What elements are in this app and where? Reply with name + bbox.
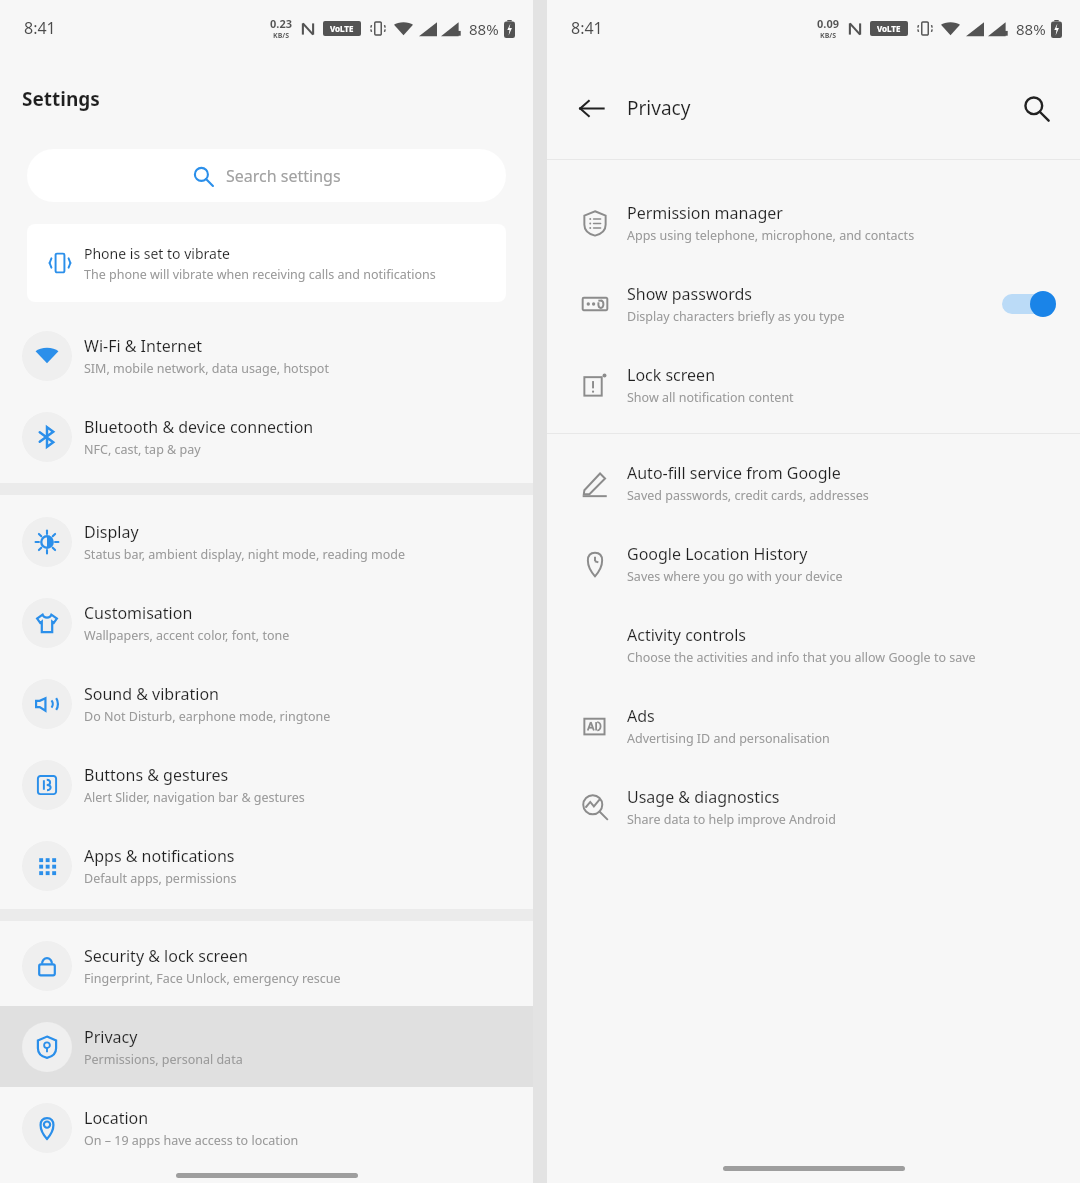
staticText: Fingerprint, Face Unlock, emergency resc… xyxy=(84,970,341,987)
button[interactable]: Show passwords xyxy=(547,263,1080,344)
staticText: Settings xyxy=(22,86,100,112)
button[interactable]: Ads xyxy=(547,685,1080,766)
staticText: Show passwords xyxy=(627,283,752,305)
button[interactable]: Lock screen xyxy=(547,344,1080,425)
staticText: Sound & vibration xyxy=(84,683,219,705)
staticText: Security & lock screen xyxy=(84,945,248,967)
staticText: Privacy xyxy=(627,95,691,121)
staticText: Lock screen xyxy=(627,364,716,386)
staticText: Privacy xyxy=(84,1026,138,1048)
staticText: Google Location History xyxy=(627,543,808,565)
button[interactable]: Auto-fill service from Google xyxy=(547,442,1080,523)
staticText: Advertising ID and personalisation xyxy=(627,730,830,747)
staticText: Display characters briefly as you type xyxy=(627,308,845,325)
staticText: Share data to help improve Android xyxy=(627,811,836,828)
staticText: Usage & diagnostics xyxy=(627,786,780,808)
button[interactable]: Location xyxy=(0,1087,533,1168)
button[interactable]: Wi-Fi & Internet xyxy=(0,315,533,396)
staticText: Do Not Disturb, earphone mode, ringtone xyxy=(84,708,331,725)
button[interactable]: Apps & notifications xyxy=(0,825,533,906)
staticText: Search settings xyxy=(226,165,341,187)
staticText: Apps using telephone, microphone, and co… xyxy=(627,227,915,244)
staticText: Activity controls xyxy=(627,624,746,646)
button[interactable]: Google Location History xyxy=(547,523,1080,604)
staticText: Ads xyxy=(627,705,655,727)
staticText: Status bar, ambient display, night mode,… xyxy=(84,546,406,563)
button[interactable]: Display xyxy=(0,501,533,582)
button[interactable]: Privacy xyxy=(0,1006,533,1087)
staticText: Bluetooth & device connection xyxy=(84,416,314,438)
staticText: Auto-fill service from Google xyxy=(627,462,841,484)
staticText: KB/S xyxy=(820,31,837,41)
staticText: SIM, mobile network, data usage, hotspot xyxy=(84,360,329,377)
staticText: Alert Slider, navigation bar & gestures xyxy=(84,789,305,806)
button[interactable]: Usage & diagnostics xyxy=(547,766,1080,847)
button[interactable]: Security & lock screen xyxy=(0,925,533,1006)
staticText: Saved passwords, credit cards, addresses xyxy=(627,487,869,504)
staticText: Buttons & gestures xyxy=(84,764,229,786)
button[interactable]: Search settings xyxy=(27,149,506,202)
staticText: 0.09 xyxy=(817,16,839,31)
staticText: KB/S xyxy=(273,31,290,41)
staticText: Saves where you go with your device xyxy=(627,568,843,585)
button[interactable]: Back xyxy=(567,84,615,132)
staticText: The phone will vibrate when receiving ca… xyxy=(84,266,436,283)
staticText: Default apps, permissions xyxy=(84,870,237,887)
button[interactable]: Phone is set to vibrate xyxy=(27,224,506,302)
staticText: Wallpapers, accent color, font, tone xyxy=(84,627,290,644)
button[interactable]: Customisation xyxy=(0,582,533,663)
staticText: Display xyxy=(84,521,139,543)
button[interactable]: Permission manager xyxy=(547,182,1080,263)
staticText: Show all notification content xyxy=(627,389,794,406)
button[interactable]: Sound & vibration xyxy=(0,663,533,744)
staticText: Permission manager xyxy=(627,202,783,224)
staticText: Permissions, personal data xyxy=(84,1051,243,1068)
button[interactable]: Search xyxy=(1012,84,1060,132)
button[interactable]: Buttons & gestures xyxy=(0,744,533,825)
staticText: Apps & notifications xyxy=(84,845,235,867)
staticText: On – 19 apps have access to location xyxy=(84,1132,299,1149)
staticText: 88% xyxy=(1016,19,1046,39)
staticText: NFC, cast, tap & pay xyxy=(84,441,201,458)
staticText: Choose the activities and info that you … xyxy=(627,649,976,666)
staticText: Phone is set to vibrate xyxy=(84,244,230,263)
button[interactable]: Bluetooth & device connection xyxy=(0,396,533,477)
staticText: 0.23 xyxy=(270,16,292,31)
staticText: Wi-Fi & Internet xyxy=(84,335,203,357)
staticText: VoLTE xyxy=(877,23,901,34)
staticText: 8:41 xyxy=(24,17,56,39)
staticText: Customisation xyxy=(84,602,193,624)
staticText: Location xyxy=(84,1107,149,1129)
staticText: 88% xyxy=(469,19,499,39)
staticText: VoLTE xyxy=(330,23,354,34)
staticText: 8:41 xyxy=(571,17,603,39)
button[interactable]: Show passwords toggle xyxy=(1000,289,1056,319)
button[interactable]: Activity controls xyxy=(547,604,1080,685)
